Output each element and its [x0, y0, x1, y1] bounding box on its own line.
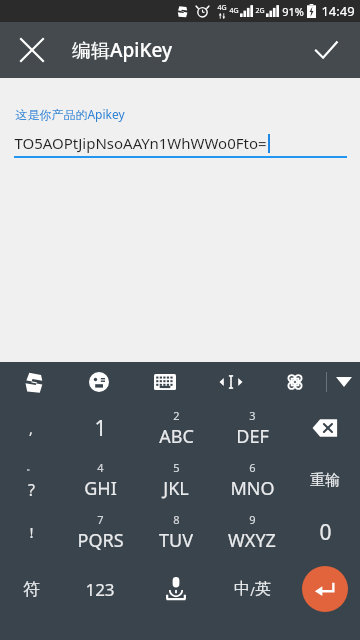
staticText: / [250, 583, 255, 599]
button[interactable]: Move cursor [198, 362, 264, 402]
staticText: ! [29, 522, 34, 542]
staticText: ABC [159, 424, 194, 449]
staticText: 这是你产品的Apikey [15, 106, 125, 122]
button[interactable]: Shortcuts [264, 362, 326, 402]
staticText: TUV [159, 528, 193, 553]
button[interactable]: 7 [62, 506, 138, 558]
staticText: 4 [97, 460, 104, 475]
button[interactable]: Close [8, 26, 56, 74]
button[interactable]: 123 [62, 558, 138, 620]
staticText: 2G [255, 6, 265, 16]
staticText: 3 [249, 408, 256, 423]
button[interactable]: 1 [62, 402, 138, 454]
button[interactable]: , [0, 402, 62, 454]
staticText: ? [28, 479, 35, 501]
staticText: 14:49 [321, 2, 355, 20]
staticText: 8 [173, 512, 180, 527]
staticText: GHI [84, 476, 117, 501]
staticText: 中 [234, 579, 250, 599]
staticText: TO5AOPtJipNsoAAYn1WhWWo0Fto= [14, 133, 267, 153]
staticText: , [29, 419, 33, 438]
staticText: 5 [173, 460, 180, 475]
staticText: 91% [282, 4, 304, 19]
staticText: 4G [217, 3, 227, 13]
button[interactable]: TO5AOPtJipNsoAAYn1WhWWo0Fto= [14, 130, 346, 156]
staticText: 2 [173, 408, 180, 423]
button[interactable]: ! [0, 506, 62, 558]
staticText: 0 [319, 518, 332, 547]
button[interactable]: Keyboard layout [132, 362, 198, 402]
button[interactable]: Enter [290, 558, 360, 620]
button[interactable]: 符 [0, 558, 62, 620]
staticText: JKL [163, 476, 189, 501]
button[interactable]: 。 [0, 454, 62, 506]
button[interactable]: 9 [214, 506, 290, 558]
button[interactable]: 5 [138, 454, 214, 506]
staticText: 编辑ApiKey [72, 37, 172, 63]
staticText: 123 [85, 578, 115, 601]
button[interactable]: 2 [138, 402, 214, 454]
button[interactable]: Collapse keyboard [327, 362, 360, 402]
staticText: 符 [23, 579, 40, 600]
button[interactable]: 重输 [290, 454, 360, 506]
staticText: 4G [229, 6, 239, 16]
staticText: 9 [249, 512, 256, 527]
button[interactable]: Confirm [302, 26, 350, 74]
button[interactable]: 6 [214, 454, 290, 506]
staticText: DEF [236, 424, 269, 449]
button[interactable]: 0 [290, 506, 360, 558]
button[interactable]: Backspace [290, 402, 360, 454]
staticText: MNO [230, 476, 275, 501]
staticText: 。 [26, 460, 36, 473]
button[interactable]: 3 [214, 402, 290, 454]
button[interactable]: 中 [214, 558, 290, 620]
staticText: 重输 [310, 471, 340, 490]
button[interactable]: Emoji [66, 362, 132, 402]
button[interactable]: 8 [138, 506, 214, 558]
button[interactable]: Voice input, space [138, 558, 214, 620]
staticText: 7 [97, 512, 104, 527]
staticText: 1 [94, 414, 107, 443]
staticText: WXYZ [228, 528, 276, 553]
staticText: 6 [249, 460, 256, 475]
button[interactable]: 4 [62, 454, 138, 506]
staticText: 英 [255, 579, 271, 599]
staticText: PQRS [77, 528, 124, 553]
button[interactable]: Sogou input [0, 362, 66, 402]
